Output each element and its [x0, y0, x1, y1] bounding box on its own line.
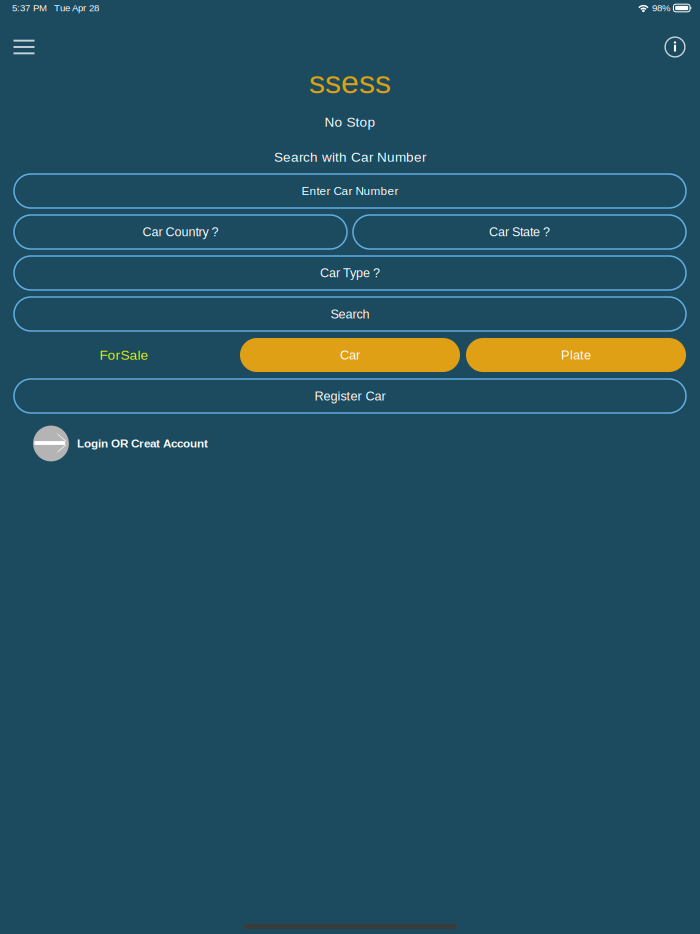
staticText: ssess [309, 64, 391, 100]
staticText: Search [330, 307, 369, 321]
staticText: Car State ? [489, 225, 550, 239]
staticText: Search with Car Number [274, 149, 426, 165]
staticText: Tue Apr 28 [54, 3, 99, 13]
staticText: Enter Car Number [301, 184, 398, 197]
button[interactable]: Car Country ? [14, 215, 347, 249]
button[interactable]: Info [655, 27, 695, 67]
button[interactable]: Enter Car Number [14, 174, 686, 208]
staticText: Car Type ? [320, 266, 380, 280]
staticText: Car [340, 348, 360, 362]
button[interactable]: Car Type ? [14, 256, 686, 290]
button[interactable]: Menu [4, 27, 44, 67]
button[interactable]: Register Car [14, 379, 686, 413]
staticText: 5:37 PM [12, 3, 47, 13]
staticText: Car Country ? [142, 225, 218, 239]
button[interactable]: Car [240, 338, 460, 372]
staticText: 98% [652, 3, 671, 13]
staticText: No Stop [324, 114, 375, 130]
staticText: Plate [561, 348, 591, 362]
button[interactable]: Login OR Creat Account [0, 421, 700, 465]
button[interactable]: Search [14, 297, 686, 331]
staticText: ForSale [99, 347, 148, 363]
staticText: Login OR Creat Account [77, 437, 208, 450]
staticText: Register Car [314, 389, 385, 403]
button[interactable]: Plate [466, 338, 686, 372]
button[interactable]: Car State ? [353, 215, 686, 249]
